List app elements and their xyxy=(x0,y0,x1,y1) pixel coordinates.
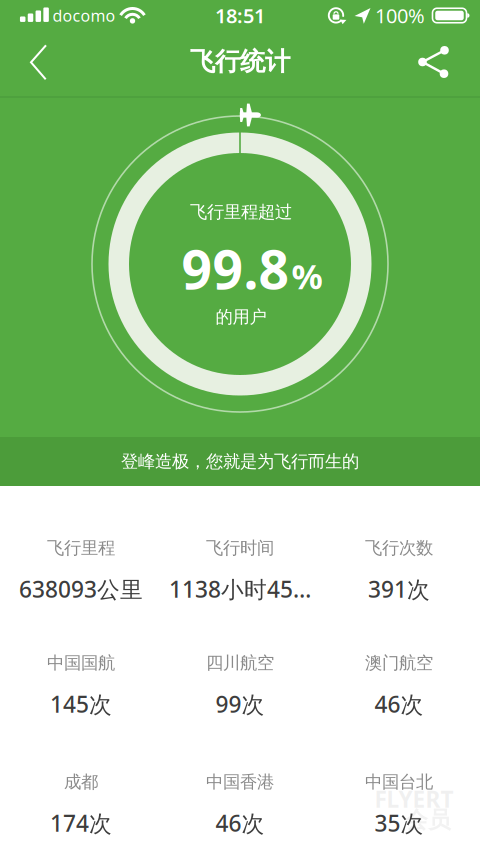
staticText: 会员 xyxy=(405,806,451,834)
staticText: FLYERT xyxy=(374,784,453,814)
staticText: % xyxy=(291,253,322,299)
staticText: docomo xyxy=(52,5,115,26)
staticText: 飞行里程 xyxy=(47,537,115,559)
staticText: 391次 xyxy=(368,574,430,604)
staticText: 飞行时间 xyxy=(206,537,274,559)
staticText: 飞行统计 xyxy=(190,46,290,77)
staticText: 18:51 xyxy=(215,2,265,29)
staticText: 99.8 xyxy=(181,233,289,304)
staticText: 100% xyxy=(375,2,425,29)
button[interactable]: Back xyxy=(17,40,61,84)
button[interactable]: Share xyxy=(414,37,458,87)
staticText: 46次 xyxy=(215,808,264,838)
staticText: 99次 xyxy=(215,689,264,719)
staticText: 飞行次数 xyxy=(365,537,433,559)
staticText: 成都 xyxy=(64,771,98,793)
staticText: 澳门航空 xyxy=(365,652,433,674)
staticText: 1138小时45… xyxy=(169,574,311,604)
staticText: 174次 xyxy=(50,808,112,838)
staticText: 中国香港 xyxy=(206,771,274,793)
staticText: 飞行里程超过 xyxy=(190,201,292,223)
staticText: 登峰造极，您就是为飞行而生的 xyxy=(121,451,359,472)
staticText: 的用户 xyxy=(215,306,266,328)
staticText: 四川航空 xyxy=(206,652,274,674)
staticText: 145次 xyxy=(50,689,112,719)
staticText: 中国台北 xyxy=(365,771,433,793)
staticText: 中国国航 xyxy=(47,652,115,674)
staticText: 638093公里 xyxy=(19,574,143,604)
staticText: 46次 xyxy=(374,689,423,719)
staticText: 35次 xyxy=(374,808,423,838)
